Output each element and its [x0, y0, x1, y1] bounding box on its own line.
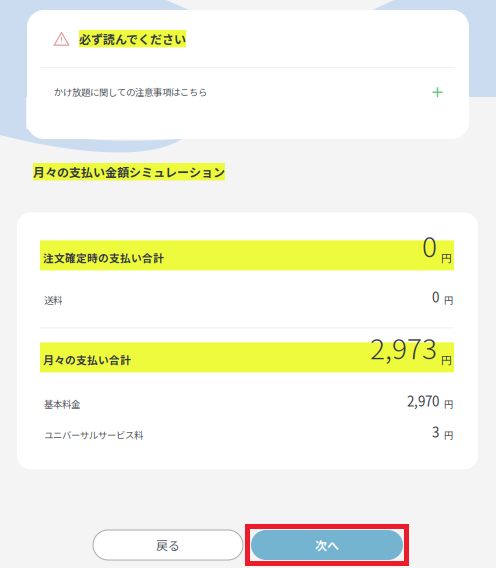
- staticText: 3: [432, 422, 439, 441]
- staticText: 月々の支払い合計: [43, 352, 131, 367]
- staticText: かけ放題に関しての注意事項はこちら: [54, 85, 207, 98]
- staticText: 円: [444, 293, 453, 306]
- staticText: 円: [444, 428, 453, 441]
- staticText: 円: [444, 397, 453, 410]
- staticText: 0: [422, 225, 437, 265]
- staticText: 注文確定時の支払い合計: [43, 250, 164, 265]
- staticText: 0: [432, 287, 439, 306]
- staticText: 月々の支払い金額シミュレーション: [33, 163, 225, 180]
- button[interactable]: かけ放題に関しての注意事項はこちら: [27, 68, 469, 133]
- staticText: 2,970: [407, 391, 439, 410]
- staticText: 円: [441, 250, 452, 265]
- staticText: 送料: [44, 293, 62, 306]
- staticText: 戻る: [156, 536, 180, 554]
- staticText: 2,973: [370, 327, 437, 367]
- staticText: 必ず読んでください: [79, 30, 186, 47]
- staticText: 次へ: [315, 536, 339, 554]
- button[interactable]: 戻る: [93, 530, 243, 560]
- staticText: ユニバーサルサービス料: [44, 428, 143, 441]
- staticText: 円: [441, 352, 452, 367]
- button[interactable]: 次へ: [245, 524, 409, 566]
- staticText: 基本料金: [44, 397, 80, 410]
